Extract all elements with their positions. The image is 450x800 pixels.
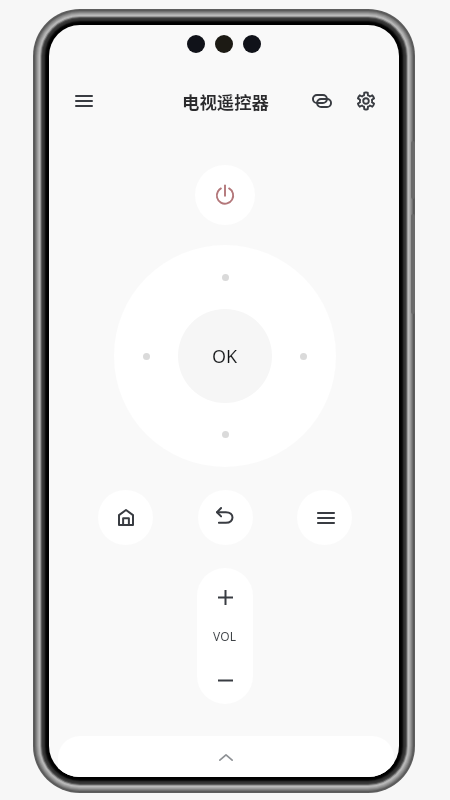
button[interactable]: Home — [98, 490, 153, 545]
button[interactable]: Back — [198, 490, 253, 545]
button[interactable]: Volume up — [197, 568, 253, 628]
button[interactable]: Menu — [297, 490, 352, 545]
button[interactable]: Volume down — [197, 648, 253, 704]
button[interactable]: Open navigation menu — [64, 81, 104, 121]
button[interactable]: Expand controls — [58, 736, 394, 777]
button[interactable]: Settings — [346, 81, 386, 121]
staticText: 电视遥控器 — [182, 89, 269, 114]
staticText: VOL — [213, 628, 237, 644]
button[interactable]: OK — [178, 309, 272, 403]
button[interactable]: Power — [195, 165, 255, 225]
staticText: OK — [212, 344, 238, 369]
button[interactable]: Connect device — [302, 81, 342, 121]
